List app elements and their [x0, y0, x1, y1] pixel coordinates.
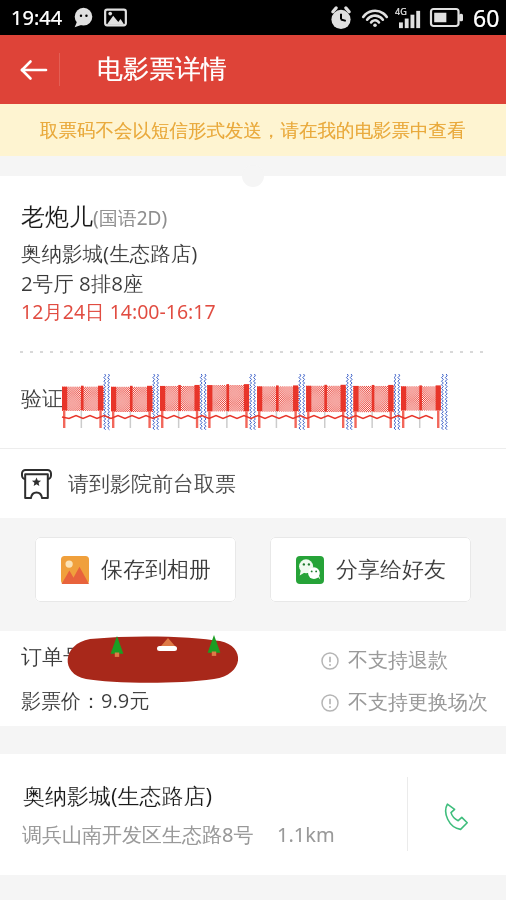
button[interactable]: Call cinema [407, 754, 506, 875]
staticText: 奥纳影城(生态路店) [23, 780, 213, 810]
staticText: 电影票详情 [97, 53, 227, 86]
staticText: 验证 [21, 386, 63, 412]
staticText: 取票码不会以短信形式发送，请在我的电影票中查看 [40, 119, 466, 142]
staticText: (国语2D) [93, 205, 168, 231]
button[interactable]: Back [0, 35, 59, 104]
staticText: 2号厅 8排8座 [21, 269, 144, 297]
staticText: 老炮儿 [21, 202, 93, 232]
staticText: 调兵山南开发区生态路8号 [22, 821, 254, 848]
staticText: 不支持更换场次 [348, 690, 488, 715]
staticText: 60 [473, 2, 500, 33]
staticText: 影票价：9.9元 [21, 687, 150, 714]
staticText: 订单号： [21, 644, 105, 670]
staticText: 奥纳影城(生态路店) [21, 239, 198, 267]
button[interactable]: 分享给好友 [270, 537, 471, 602]
staticText: 不支持退款 [348, 648, 448, 673]
staticText: 12月24日 14:00-16:17 [21, 298, 216, 325]
staticText: 19:44 [11, 4, 63, 31]
staticText: 4G [395, 5, 407, 17]
button[interactable]: 保存到相册 [35, 537, 236, 602]
button[interactable]: 请到影院前台取票 [0, 449, 506, 518]
staticText: 1.1km [277, 821, 335, 848]
staticText: 分享给好友 [336, 556, 446, 584]
staticText: 请到影院前台取票 [68, 471, 236, 497]
staticText: 保存到相册 [101, 556, 211, 584]
